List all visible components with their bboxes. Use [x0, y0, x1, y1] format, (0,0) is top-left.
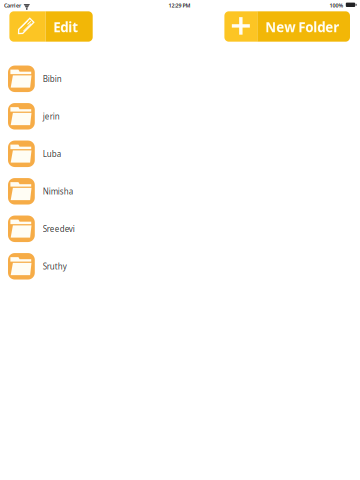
staticText: Luba	[43, 148, 61, 159]
button[interactable]: Bibin	[0, 60, 360, 97]
staticText: jerin	[43, 111, 60, 122]
button[interactable]: jerin	[0, 97, 360, 135]
staticText: New Folder	[265, 18, 339, 36]
staticText: 100%	[330, 2, 344, 9]
button[interactable]: Sreedevi	[0, 210, 360, 248]
staticText: Sreedevi	[43, 223, 75, 234]
staticText: Carrier	[4, 2, 21, 9]
button[interactable]: Edit	[9, 11, 93, 42]
staticText: 12:29 PM	[168, 2, 190, 9]
staticText: Bibin	[43, 73, 62, 84]
staticText: Sruthy	[43, 261, 67, 272]
staticText: Edit	[53, 18, 78, 36]
button[interactable]: Sruthy	[0, 248, 360, 285]
button[interactable]: New Folder	[224, 11, 350, 42]
button[interactable]: Nimisha	[0, 173, 360, 210]
button[interactable]: Luba	[0, 135, 360, 173]
staticText: Nimisha	[43, 186, 73, 197]
